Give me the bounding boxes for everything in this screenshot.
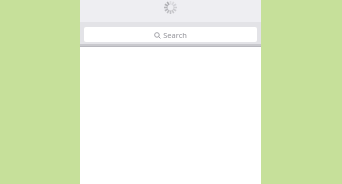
staticText: Search (163, 30, 187, 40)
other: Loading (164, 1, 177, 14)
button[interactable]: Search (84, 27, 257, 42)
